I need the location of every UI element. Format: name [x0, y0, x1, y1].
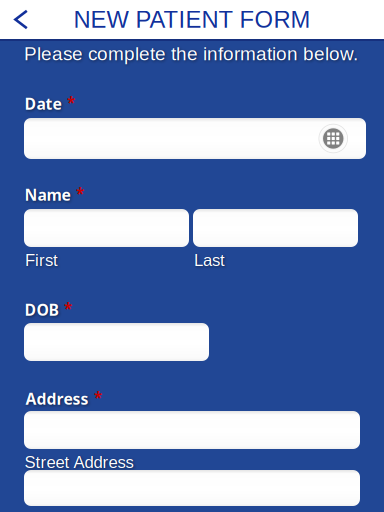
staticText: Street Address: [24, 453, 133, 472]
staticText: *: [67, 91, 75, 112]
staticText: Name: [24, 184, 70, 205]
staticText: First: [25, 251, 58, 270]
button[interactable]: Street address field: [24, 470, 360, 506]
button[interactable]: Back: [0, 0, 42, 39]
staticText: *: [64, 297, 72, 318]
staticText: Please complete the information below.: [24, 43, 358, 64]
button[interactable]: Last name field: [193, 209, 358, 247]
staticText: Address: [25, 388, 88, 409]
staticText: DOB: [24, 299, 58, 320]
staticText: Last: [194, 251, 225, 270]
staticText: *: [76, 182, 84, 203]
staticText: *: [94, 386, 102, 407]
staticText: NEW PATIENT FORM: [73, 6, 310, 33]
button[interactable]: Date of birth field: [24, 323, 209, 361]
button[interactable]: First name field: [24, 209, 189, 247]
button[interactable]: Address field: [24, 411, 360, 449]
staticText: Date: [24, 93, 61, 114]
button[interactable]: Date field: [24, 118, 366, 159]
